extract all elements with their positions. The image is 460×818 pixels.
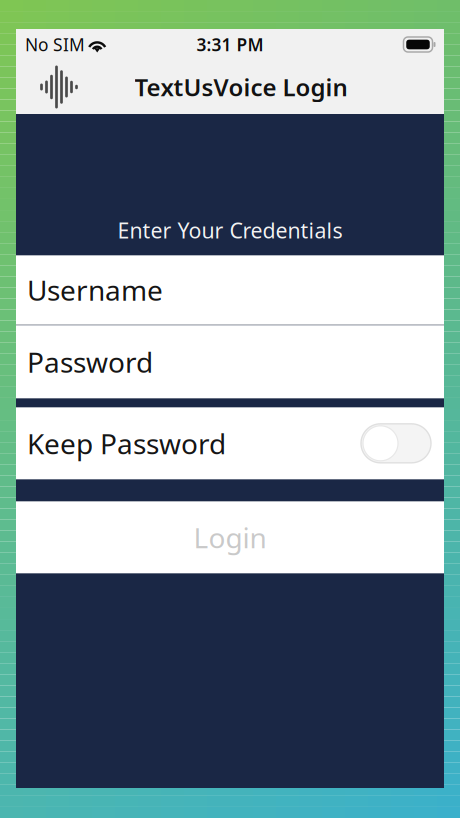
button[interactable]: Login bbox=[16, 501, 444, 573]
button[interactable]: Username bbox=[16, 255, 444, 324]
button[interactable]: Voice bbox=[16, 60, 94, 114]
staticText: Login bbox=[193, 519, 266, 556]
staticText: Enter Your Credentials bbox=[117, 216, 342, 244]
staticText: Username bbox=[27, 271, 163, 308]
button[interactable]: Password bbox=[16, 325, 444, 398]
staticText: No SIM bbox=[25, 33, 85, 56]
staticText: 3:31 PM bbox=[196, 33, 263, 56]
staticText: Password bbox=[27, 343, 153, 380]
staticText: Keep Password bbox=[27, 425, 226, 462]
staticText: TextUsVoice Login bbox=[134, 71, 347, 103]
button[interactable]: Keep Password bbox=[16, 407, 444, 479]
